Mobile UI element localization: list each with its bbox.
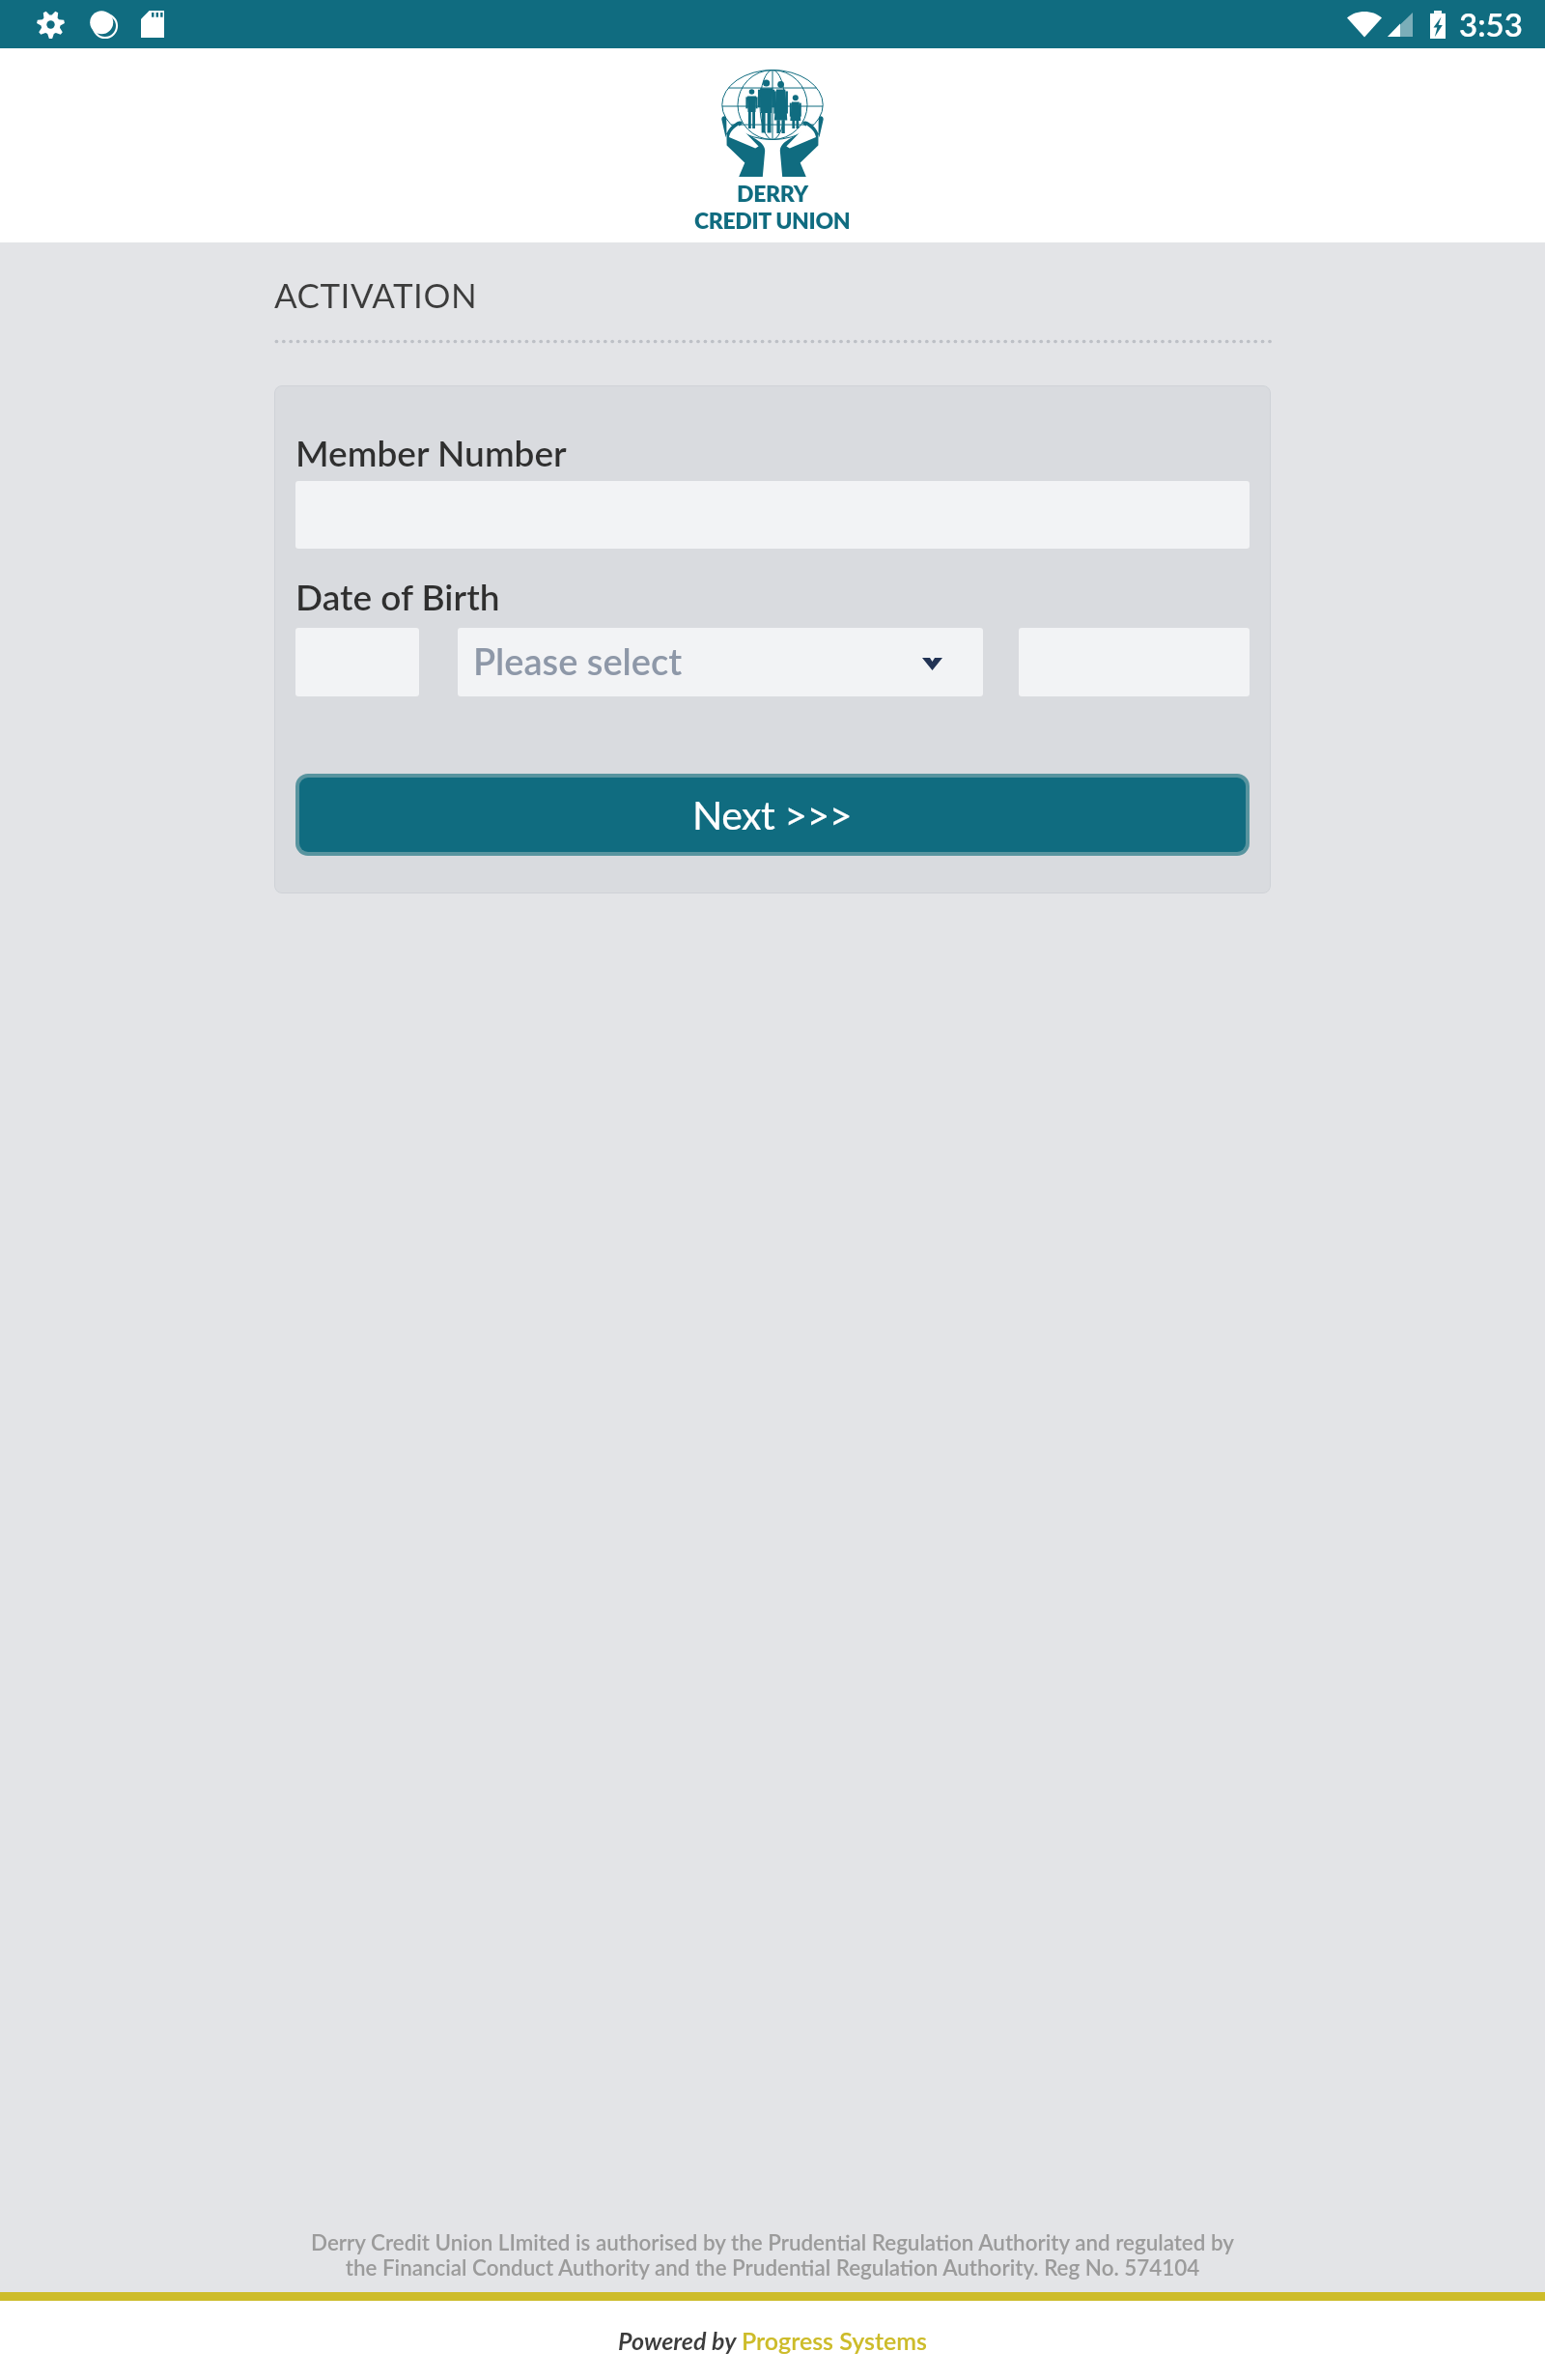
staticText: Progress Systems [742,2326,927,2355]
staticText: Please select [473,638,683,683]
other: SD card [141,11,164,38]
button[interactable] [295,481,1250,549]
other: Battery charging [1430,11,1446,39]
staticText: ACTIVATION [274,274,478,315]
other: Mobile signal [1388,13,1413,37]
button[interactable]: Next >>> [299,778,1246,852]
staticText: Powered by [618,2326,742,2355]
staticText: 3:53 [1459,5,1523,43]
button[interactable]: Please select [458,628,983,696]
other: Derry Credit Union [721,70,824,178]
staticText: Member Number [295,431,567,473]
staticText: CREDIT UNION [694,207,851,234]
staticText: Date of Birth [295,575,500,617]
other: Do not disturb [89,10,118,39]
staticText: Derry Credit Union LImited is authorised… [0,2229,1545,2281]
staticText: Next >>> [692,791,853,838]
other: Wi-Fi [1347,12,1382,38]
other: Settings [37,11,65,39]
staticText: DERRY [737,180,808,207]
